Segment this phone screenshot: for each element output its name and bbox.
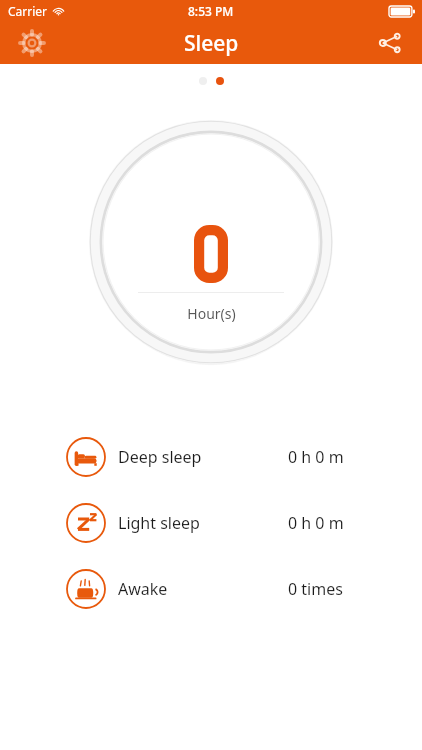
staticText: Deep sleep (118, 446, 202, 468)
staticText: 0 h 0 m (288, 512, 344, 534)
staticText: 8:53 PM (188, 3, 234, 19)
staticText: Hour(s) (187, 304, 236, 323)
button[interactable]: Light sleep (0, 503, 422, 543)
staticText: Awake (118, 578, 168, 600)
button[interactable]: Page 1 (199, 77, 207, 85)
staticText: Carrier (8, 3, 48, 19)
button[interactable]: Awake (0, 569, 422, 609)
staticText: Sleep (184, 29, 239, 58)
staticText: 0 h 0 m (288, 446, 344, 468)
staticText: Light sleep (118, 512, 200, 534)
button[interactable]: Deep sleep (0, 437, 422, 477)
staticText: 0 times (288, 578, 343, 600)
button[interactable]: Page 2 (216, 77, 224, 85)
button[interactable]: Sleep hours (89, 120, 333, 364)
button[interactable]: Share (368, 22, 412, 64)
button[interactable]: Settings (10, 22, 54, 64)
